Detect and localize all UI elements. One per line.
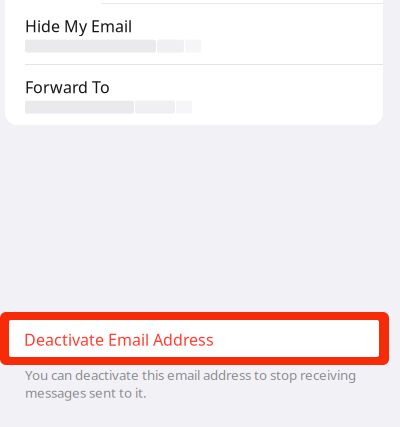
button[interactable]: Forward To — [5, 65, 383, 125]
button[interactable]: Deactivate Email Address — [9, 320, 379, 357]
staticText: Deactivate Email Address — [24, 329, 214, 350]
staticText: Forward To — [25, 76, 110, 98]
staticText: Hide My Email — [25, 15, 132, 37]
staticText: You can deactivate this email address to… — [25, 366, 356, 401]
button[interactable]: Hide My Email — [5, 4, 383, 64]
